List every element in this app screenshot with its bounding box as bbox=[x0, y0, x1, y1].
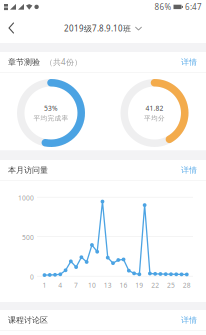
staticText: 平均完成率 bbox=[33, 114, 68, 122]
staticText: 6:47 bbox=[185, 2, 202, 12]
staticText: 19 bbox=[135, 281, 143, 290]
staticText: 详情 bbox=[181, 315, 197, 325]
staticText: 平均分 bbox=[144, 114, 165, 122]
staticText: 详情 bbox=[181, 57, 197, 67]
staticText: 0 bbox=[30, 272, 34, 281]
button[interactable]: 2019级7.8.9.10班 bbox=[64, 17, 142, 40]
staticText: 详情 bbox=[181, 165, 197, 175]
button[interactable]: Back bbox=[0, 14, 24, 43]
staticText: 22 bbox=[151, 281, 159, 290]
staticText: 本月访问量 bbox=[8, 165, 48, 175]
button[interactable]: 详情 bbox=[169, 52, 197, 72]
button[interactable]: 详情 bbox=[169, 160, 197, 180]
staticText: （共4份） bbox=[45, 57, 82, 67]
staticText: 章节测验 bbox=[8, 57, 40, 67]
staticText: 53% bbox=[44, 104, 58, 113]
staticText: 2019级7.8.9.10班 bbox=[64, 23, 131, 34]
staticText: 16 bbox=[120, 281, 128, 290]
staticText: 86% bbox=[154, 2, 171, 12]
button[interactable]: 详情 bbox=[169, 310, 197, 330]
staticText: 4 bbox=[58, 281, 62, 290]
staticText: 500 bbox=[22, 233, 34, 242]
staticText: 课程讨论区 bbox=[8, 315, 48, 325]
staticText: 1 bbox=[42, 281, 46, 290]
staticText: 13 bbox=[104, 281, 112, 290]
staticText: 41.82 bbox=[145, 104, 163, 113]
staticText: 1000 bbox=[18, 193, 34, 202]
staticText: 7 bbox=[74, 281, 78, 290]
staticText: 25 bbox=[167, 281, 175, 290]
staticText: 10 bbox=[88, 281, 96, 290]
staticText: 28 bbox=[183, 281, 191, 290]
